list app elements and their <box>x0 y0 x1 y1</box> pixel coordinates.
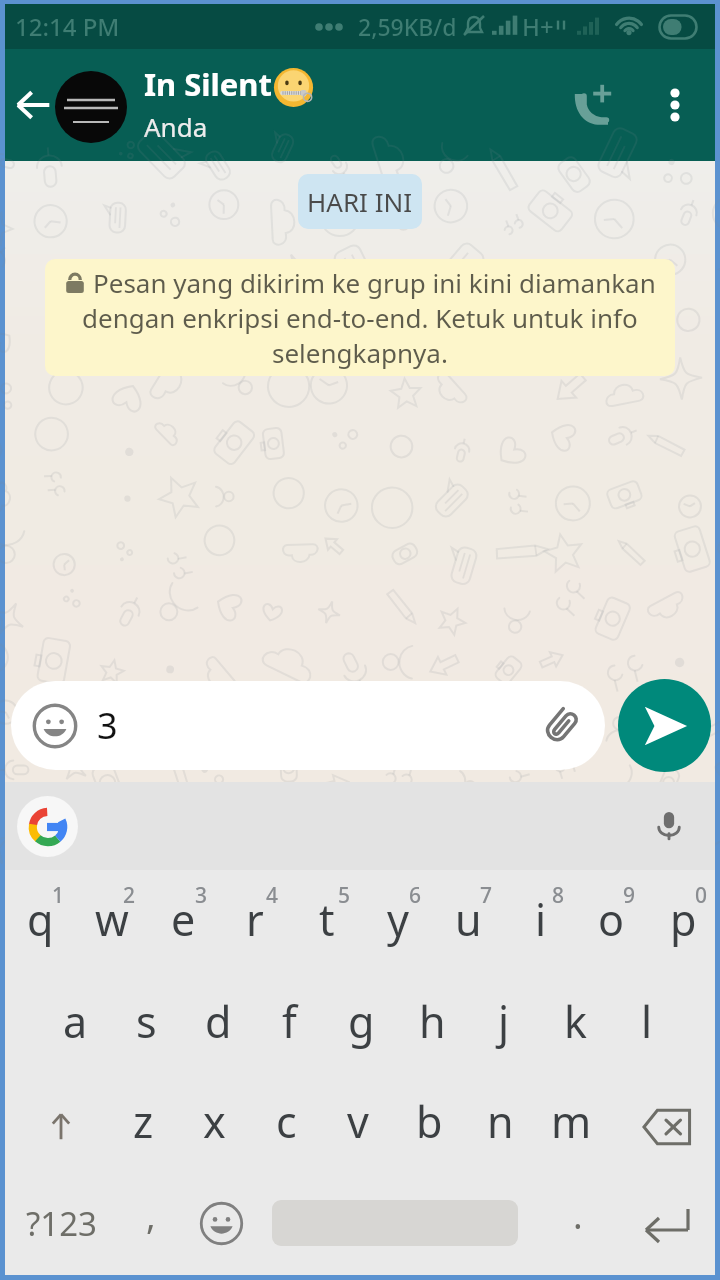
staticText: Anda <box>144 109 208 144</box>
button[interactable]: . <box>545 1184 611 1275</box>
staticText: q <box>27 890 54 949</box>
staticText: p <box>670 890 697 949</box>
staticText: 5 <box>338 881 351 910</box>
button[interactable]: HARI INI <box>298 174 422 229</box>
button[interactable]: m <box>536 1081 607 1184</box>
staticText: c <box>276 1092 297 1151</box>
staticText: a <box>63 992 88 1051</box>
button[interactable]: Attach <box>535 701 585 751</box>
button[interactable]: Shift <box>25 1081 97 1184</box>
button[interactable]: Profile photo <box>55 71 127 143</box>
staticText: y <box>387 890 409 949</box>
staticText: 12:14 PM <box>15 10 120 43</box>
button[interactable]: Emoji <box>31 702 79 750</box>
button[interactable]: ?123 <box>11 1184 111 1275</box>
staticText: x <box>203 1092 226 1151</box>
staticText: In Silent <box>144 63 272 105</box>
button[interactable]: v <box>322 1081 393 1184</box>
staticText: 8 <box>552 881 565 910</box>
staticText: Pesan yang dikirim ke grup ini kini diam… <box>93 265 656 300</box>
staticText: r <box>246 890 264 949</box>
staticText: 7 <box>480 881 493 910</box>
button[interactable]: i <box>505 870 576 978</box>
staticText: 4 <box>266 881 279 910</box>
staticText: dengan enkripsi end-to-end. Ketuk untuk … <box>82 300 638 335</box>
button[interactable]: Back <box>5 49 69 161</box>
staticText: . <box>573 1191 583 1240</box>
staticText: ?123 <box>26 1201 97 1246</box>
button[interactable]: Backspace <box>629 1081 705 1184</box>
button[interactable]: q <box>5 870 76 978</box>
button[interactable]: e <box>148 870 219 978</box>
button[interactable]: Emoji <box>11 681 605 770</box>
button[interactable]: , <box>118 1184 184 1275</box>
button[interactable]: n <box>465 1081 536 1184</box>
staticText: w <box>95 890 129 949</box>
staticText: HARI INI <box>307 184 413 219</box>
button[interactable]: f <box>254 978 325 1081</box>
button[interactable]: g <box>326 978 397 1081</box>
button[interactable]: r <box>219 870 290 978</box>
button[interactable]: x <box>179 1081 250 1184</box>
button[interactable]: d <box>183 978 254 1081</box>
button[interactable]: Pesan yang dikirim ke grup ini kini diam… <box>45 259 675 376</box>
button[interactable]: h <box>397 978 468 1081</box>
staticText: v <box>347 1092 369 1151</box>
button[interactable]: Emoji keyboard <box>187 1184 255 1275</box>
staticText: g <box>348 992 375 1051</box>
staticText: f <box>282 992 297 1051</box>
staticText: l <box>641 992 653 1051</box>
button[interactable]: Enter <box>629 1184 705 1275</box>
button[interactable]: l <box>611 978 682 1081</box>
staticText: j <box>498 992 510 1051</box>
staticText: d <box>205 992 232 1051</box>
staticText: 2 <box>123 881 136 910</box>
staticText: t <box>319 890 335 949</box>
staticText: , <box>146 1191 156 1240</box>
button[interactable]: c <box>251 1081 322 1184</box>
staticText: 6 <box>409 881 422 910</box>
button[interactable]: b <box>394 1081 465 1184</box>
staticText: m <box>551 1092 592 1151</box>
button[interactable]: Voice input <box>643 800 695 852</box>
button[interactable]: t <box>291 870 362 978</box>
staticText: z <box>133 1092 154 1151</box>
button[interactable]: s <box>111 978 182 1081</box>
button[interactable]: y <box>362 870 433 978</box>
staticText: k <box>564 992 587 1051</box>
staticText: 1 <box>52 881 65 910</box>
button[interactable]: More options <box>638 71 706 139</box>
staticText: e <box>171 890 196 949</box>
staticText: h <box>419 992 446 1051</box>
button[interactable]: Google <box>17 796 78 857</box>
button[interactable]: o <box>576 870 647 978</box>
button[interactable]: a <box>40 978 111 1081</box>
staticText: 9 <box>623 881 636 910</box>
button[interactable]: j <box>468 978 539 1081</box>
button[interactable]: Call <box>554 67 630 143</box>
button[interactable]: p <box>648 870 719 978</box>
button[interactable]: z <box>108 1081 179 1184</box>
staticText: selengkapnya. <box>272 335 448 370</box>
staticText: s <box>136 992 157 1051</box>
staticText: i <box>535 890 547 949</box>
staticText: H+ <box>522 10 554 43</box>
button[interactable]: k <box>540 978 611 1081</box>
staticText: 0 <box>695 881 708 910</box>
staticText: b <box>416 1092 443 1151</box>
staticText: u <box>455 890 482 949</box>
staticText: 2,59KB/d <box>358 11 457 42</box>
button[interactable]: w <box>76 870 147 978</box>
staticText: 3 <box>97 701 118 750</box>
staticText: 3 <box>195 881 208 910</box>
button[interactable]: Send <box>618 679 711 772</box>
staticText: n <box>487 1092 514 1151</box>
button[interactable]: u <box>433 870 504 978</box>
staticText: o <box>598 890 625 949</box>
